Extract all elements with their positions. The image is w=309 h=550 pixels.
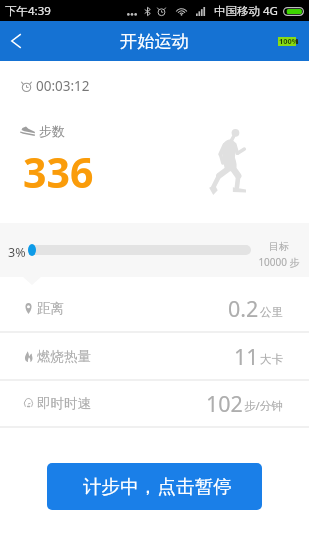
staticText: 目标 [269, 240, 289, 253]
staticText: 燃烧热量 [37, 348, 91, 365]
button[interactable]: 燃烧热量 [0, 333, 309, 379]
staticText: 距离 [37, 300, 64, 317]
staticText: 336 [23, 144, 94, 200]
staticText: 步/分钟 [244, 398, 283, 414]
button[interactable]: Battery level [278, 36, 298, 46]
staticText: 计步中，点击暂停 [83, 475, 232, 498]
staticText: 10000 步 [258, 255, 300, 269]
staticText: 3% [8, 244, 26, 261]
button[interactable]: Back [0, 21, 32, 61]
staticText: 100% [279, 36, 299, 46]
staticText: 11 [234, 342, 259, 371]
button[interactable]: 计步中，点击暂停 [47, 463, 262, 510]
button[interactable]: 即时时速 [0, 380, 309, 426]
staticText: 102 [206, 389, 243, 418]
button[interactable]: 距离 [0, 285, 309, 332]
staticText: 即时时速 [37, 395, 91, 412]
staticText: 公里 [260, 305, 283, 319]
staticText: 大卡 [260, 352, 283, 366]
staticText: 步数 [39, 123, 65, 139]
staticText: 中国移动 4G [214, 3, 278, 19]
staticText: 开始运动 [120, 30, 189, 52]
staticText: 00:03:12 [36, 77, 90, 95]
staticText: 0.2 [228, 294, 259, 323]
staticText: 下午4:39 [5, 3, 51, 19]
